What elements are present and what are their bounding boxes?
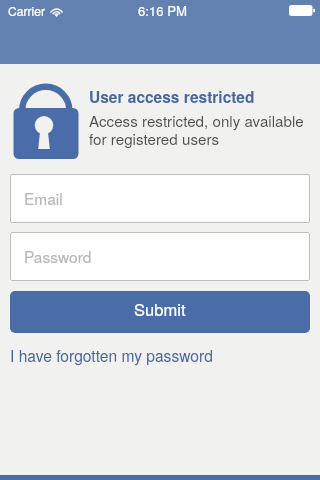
staticText: Submit	[134, 297, 186, 321]
button[interactable]: Submit	[10, 291, 310, 333]
staticText: User access restricted	[89, 86, 255, 108]
staticText: Password	[24, 245, 92, 267]
button[interactable]: Password	[10, 232, 310, 281]
button[interactable]: I have forgotten my password	[10, 344, 213, 366]
staticText: Access restricted, only available for re…	[89, 110, 304, 150]
staticText: I have forgotten my password	[10, 344, 213, 366]
other: Battery	[289, 5, 315, 16]
staticText: 6:16 PM	[138, 1, 188, 20]
staticText: Email	[24, 187, 63, 209]
staticText: Carrier	[8, 2, 45, 19]
other: Wi-Fi	[50, 6, 63, 16]
button[interactable]: Email	[10, 174, 310, 223]
